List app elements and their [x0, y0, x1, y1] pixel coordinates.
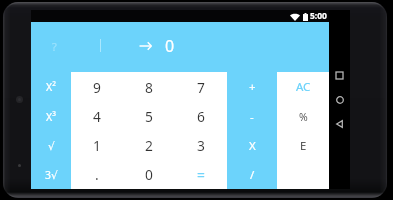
staticText: AC [296, 79, 311, 95]
staticText: 2 [145, 136, 153, 155]
button[interactable]: % [277, 102, 329, 131]
staticText: . [95, 165, 99, 184]
button[interactable]: 5 [123, 102, 175, 131]
staticText: 9 [93, 78, 101, 97]
button[interactable]: 4 [71, 102, 123, 131]
button[interactable]: 6 [175, 102, 227, 131]
staticText: 1 [93, 136, 101, 155]
button[interactable]: + [227, 72, 277, 102]
staticText: 5 [145, 107, 153, 126]
staticText: 4 [93, 107, 101, 126]
button[interactable]: X³ [31, 102, 71, 131]
staticText: + [249, 79, 256, 95]
button[interactable]: . [71, 160, 123, 189]
staticText: / [250, 167, 255, 183]
staticText: 5:00 [310, 10, 327, 22]
button[interactable]: 1 [71, 131, 123, 160]
staticText: 7 [197, 78, 205, 97]
button[interactable]: 8 [123, 72, 175, 102]
button[interactable]: 3 [175, 131, 227, 160]
staticText: √ [48, 140, 55, 152]
button[interactable]: = [175, 160, 227, 189]
staticText: X² [46, 80, 56, 94]
button[interactable]: 2 [123, 131, 175, 160]
button[interactable]: Back [329, 117, 350, 131]
button[interactable]: Home [329, 93, 350, 107]
button[interactable]: 7 [175, 72, 227, 102]
staticText: X³ [46, 110, 56, 124]
staticText: 3√ [45, 168, 58, 182]
button[interactable]: E [277, 131, 329, 160]
button[interactable]: 0 [123, 160, 175, 189]
button[interactable]: 3√ [31, 160, 71, 189]
staticText: 0 [145, 165, 153, 184]
staticText: 6 [197, 107, 205, 126]
button[interactable]: - [227, 102, 277, 131]
staticText: - [250, 109, 254, 125]
staticText: 3 [197, 136, 205, 155]
button[interactable]: X² [31, 72, 71, 102]
staticText: % [299, 110, 308, 124]
button[interactable]: / [227, 160, 277, 189]
staticText: = [197, 165, 205, 184]
button[interactable]: 9 [71, 72, 123, 102]
button[interactable]: X [227, 131, 277, 160]
button[interactable]: AC [277, 72, 329, 102]
staticText: ? [52, 39, 57, 54]
staticText: X [249, 138, 256, 154]
button[interactable]: √ [31, 131, 71, 160]
staticText: 8 [145, 78, 153, 97]
staticText: E [300, 138, 307, 154]
staticText: 0 [165, 35, 175, 57]
button[interactable]: Recent apps [329, 68, 350, 82]
